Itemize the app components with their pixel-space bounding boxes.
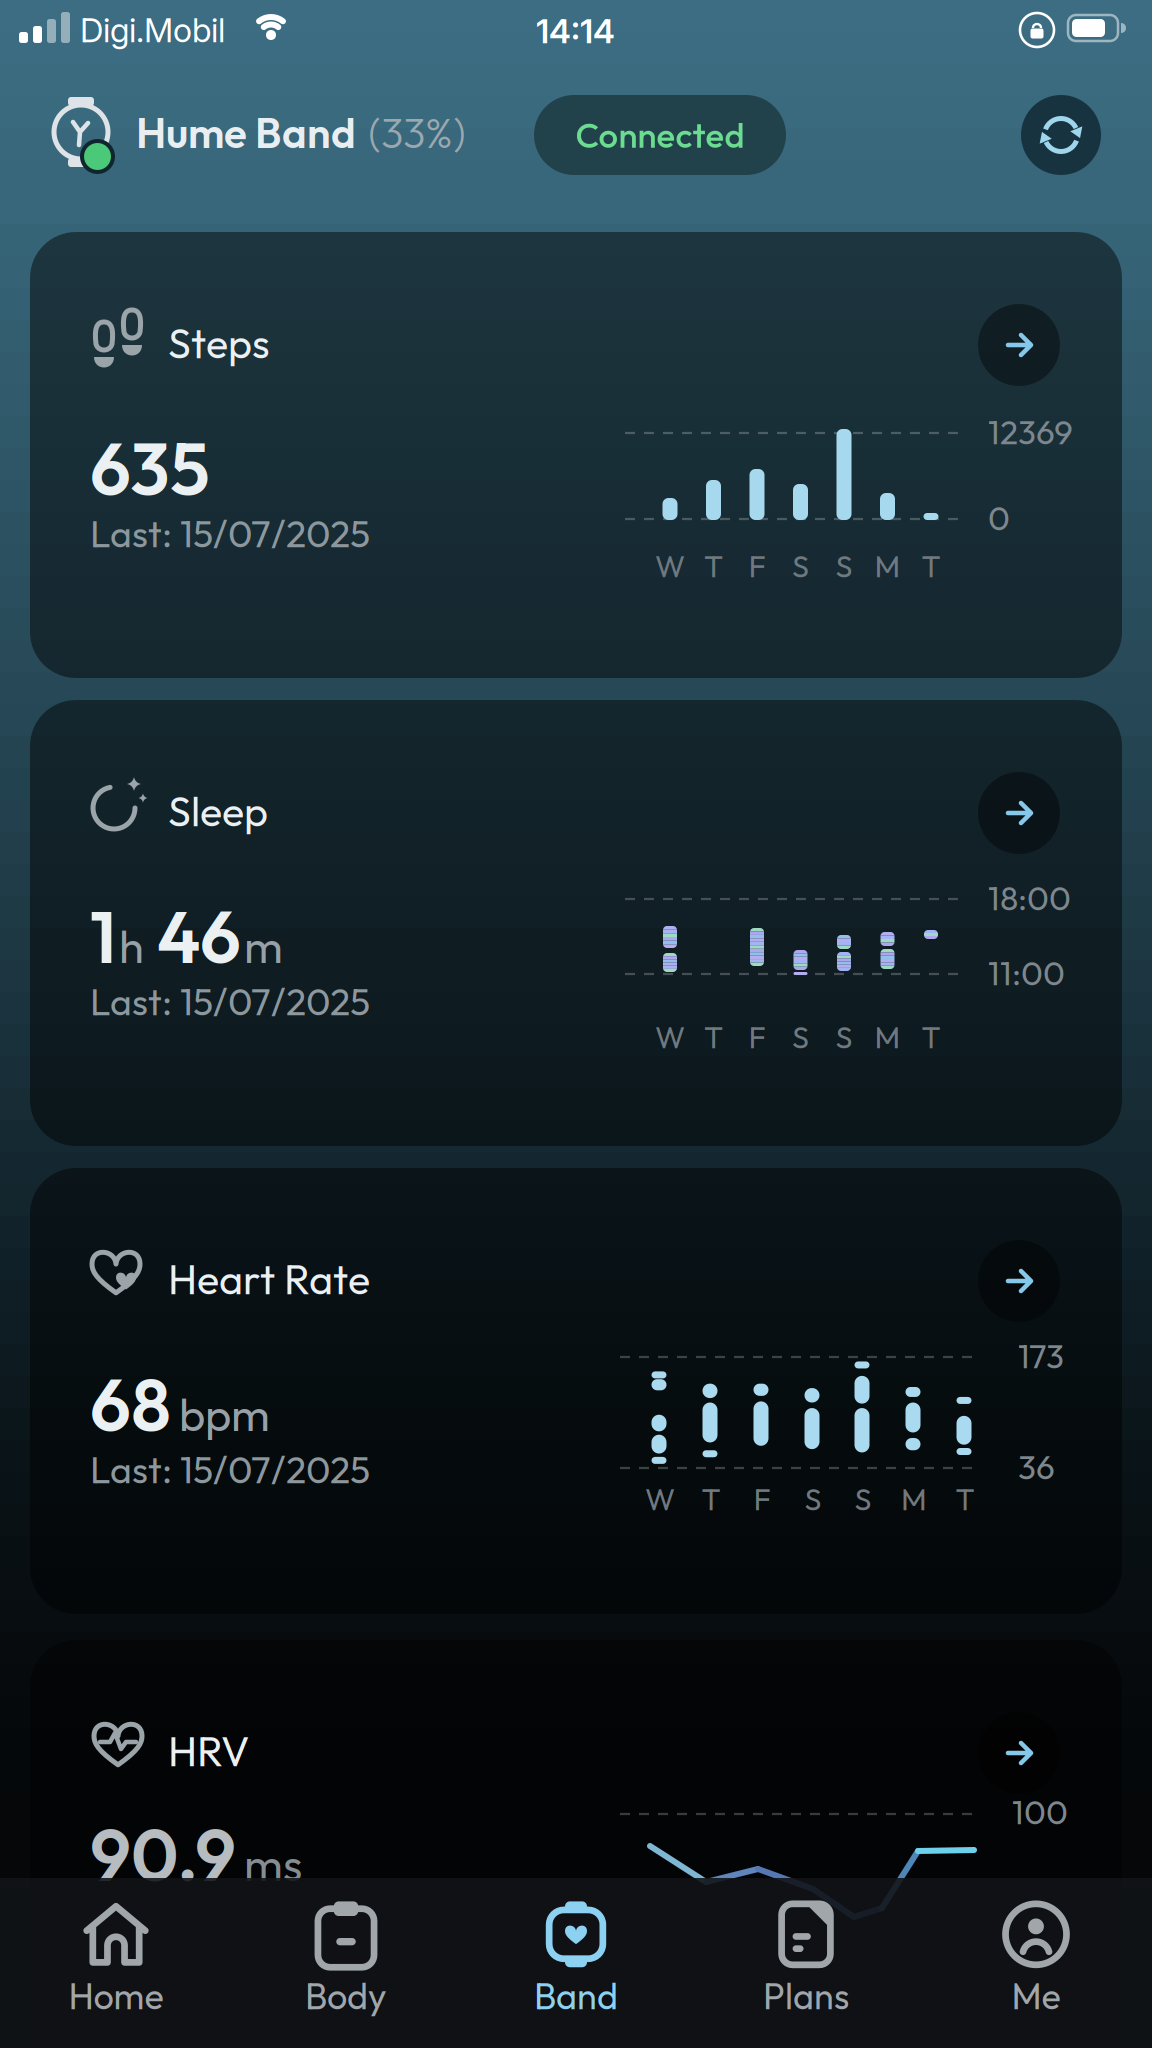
staticText: M (901, 1480, 927, 1518)
button[interactable]: Band (461, 1883, 691, 2043)
staticText: 100 (1012, 1791, 1068, 1833)
staticText: ms (244, 1836, 302, 1893)
staticText: W (645, 1480, 675, 1518)
staticText: 18:00 (988, 877, 1071, 919)
staticText: S (835, 1018, 852, 1056)
staticText: F (748, 1018, 765, 1056)
staticText: 90.9 (90, 1809, 236, 1900)
button[interactable]: Home (1, 1883, 231, 2043)
staticText: Plans (763, 1973, 849, 2019)
staticText: Body (305, 1973, 387, 2019)
staticText: 1 (90, 891, 116, 982)
staticText: S (804, 1480, 821, 1518)
staticText: m (244, 918, 283, 975)
staticText: h (119, 918, 144, 975)
button[interactable]: Sync (1021, 95, 1101, 175)
button[interactable]: Connected (534, 95, 786, 175)
staticText: Steps (168, 317, 270, 369)
staticText: Sleep (168, 785, 268, 837)
staticText: Last: 15/07/2025 (90, 1446, 370, 1493)
staticText: Me (1011, 1973, 1060, 2019)
staticText: M (874, 1018, 900, 1056)
staticText: 46 (157, 891, 241, 982)
staticText: 12369 (988, 411, 1073, 453)
staticText: 68 (90, 1359, 171, 1450)
staticText: Band (534, 1973, 618, 2019)
staticText: 0 (988, 497, 1010, 539)
staticText: F (753, 1480, 770, 1518)
staticText: 36 (1018, 1446, 1055, 1488)
staticText: (33%) (368, 106, 466, 159)
staticText: T (704, 547, 723, 585)
staticText: W (655, 1018, 685, 1056)
staticText: S (792, 547, 809, 585)
staticText: T (701, 1480, 720, 1518)
button[interactable]: Body (231, 1883, 461, 2043)
staticText: Connected (575, 113, 744, 157)
staticText: 14:14 (536, 11, 615, 51)
staticText: HRV (168, 1725, 249, 1777)
staticText: S (792, 1018, 809, 1056)
staticText: F (748, 547, 765, 585)
staticText: 11:00 (988, 952, 1065, 994)
staticText: 173 (1018, 1335, 1064, 1377)
staticText: W (655, 547, 685, 585)
staticText: Last: 15/07/2025 (90, 978, 370, 1025)
staticText: M (874, 547, 900, 585)
staticText: T (955, 1480, 974, 1518)
button[interactable]: Details (978, 1712, 1060, 1794)
staticText: S (854, 1480, 871, 1518)
button[interactable]: Plans (691, 1883, 921, 2043)
staticText: 635 (90, 423, 210, 514)
staticText: T (704, 1018, 723, 1056)
staticText: Last: 15/07/2025 (90, 510, 370, 557)
staticText: Hume Band (136, 106, 356, 159)
staticText: bpm (179, 1386, 270, 1443)
staticText: T (921, 1018, 940, 1056)
staticText: Home (68, 1973, 163, 2019)
button[interactable]: Details (978, 304, 1060, 386)
staticText: S (835, 547, 852, 585)
staticText: Heart Rate (168, 1253, 370, 1305)
button[interactable]: Details (978, 772, 1060, 854)
staticText: Digi.Mobil (80, 10, 225, 50)
button[interactable]: Me (921, 1883, 1151, 2043)
button[interactable]: Details (978, 1240, 1060, 1322)
staticText: T (921, 547, 940, 585)
